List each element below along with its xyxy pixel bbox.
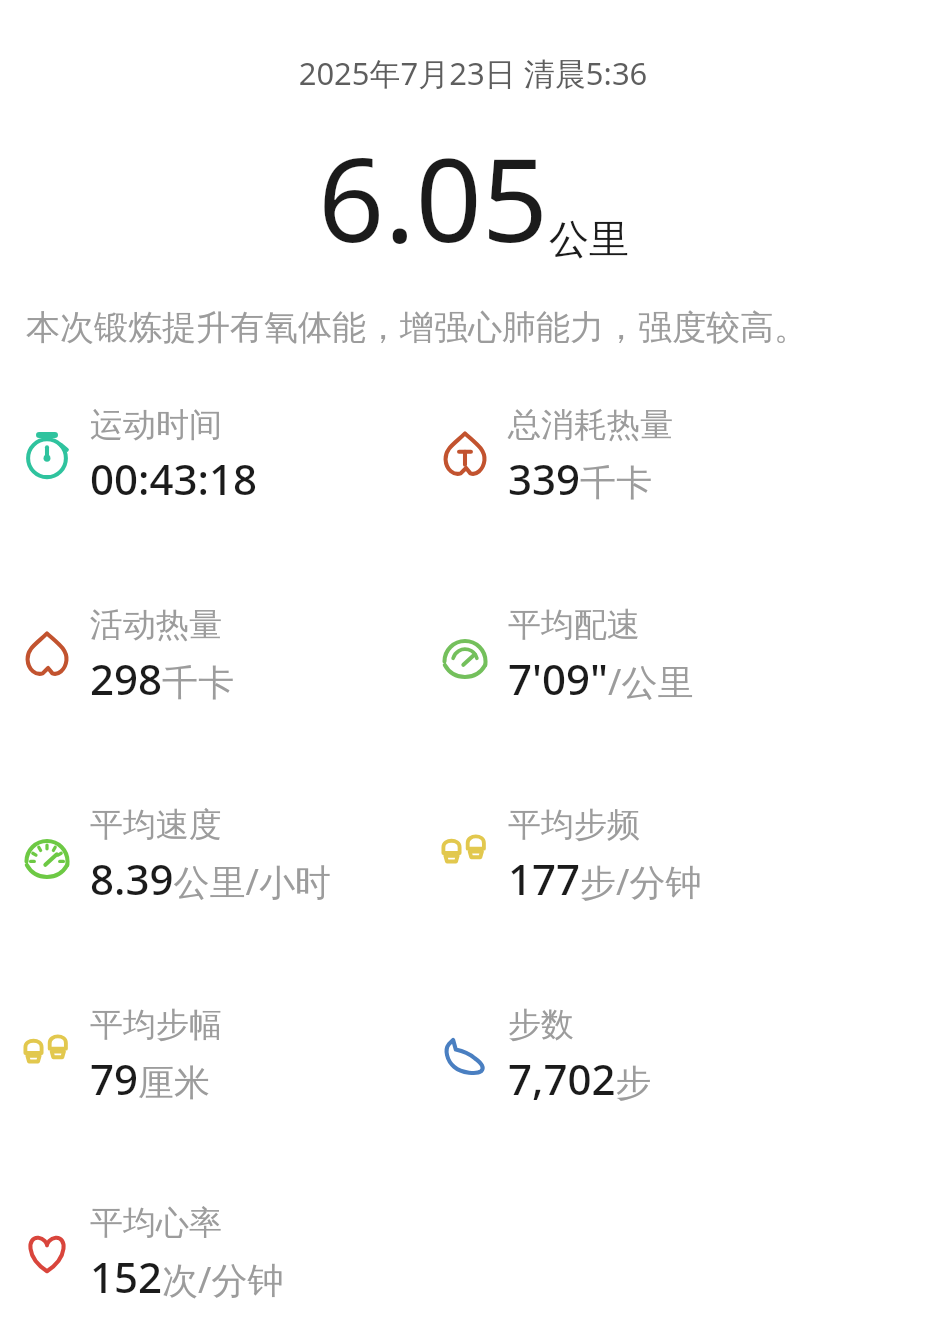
staticText: 7'09"/公里	[508, 650, 694, 707]
staticText: 平均速度	[90, 804, 222, 846]
staticText: 平均配速	[508, 604, 640, 646]
button[interactable]: Average pace	[418, 575, 946, 735]
staticText: 6.05	[318, 118, 549, 276]
staticText: 7,702步	[508, 1050, 652, 1107]
staticText: 339千卡	[508, 450, 653, 507]
button[interactable]: Total calories	[418, 375, 946, 535]
staticText: 公里	[549, 214, 629, 264]
staticText: 运动时间	[90, 404, 222, 446]
staticText: 8.39公里/小时	[90, 850, 331, 907]
staticText: 298千卡	[90, 650, 235, 707]
staticText: 平均心率	[90, 1202, 222, 1244]
button[interactable]: Steps	[418, 975, 946, 1135]
button[interactable]: Average stride	[0, 975, 418, 1135]
button[interactable]: Average heart rate	[0, 1175, 418, 1332]
staticText: 177步/分钟	[508, 850, 702, 907]
staticText: 步数	[508, 1004, 574, 1046]
staticText: 00:43:18	[90, 450, 257, 507]
staticText: 平均步幅	[90, 1004, 222, 1046]
staticText: 平均步频	[508, 804, 640, 846]
staticText: 总消耗热量	[508, 404, 673, 446]
button[interactable]: Exercise time	[0, 375, 418, 535]
button[interactable]: Average cadence	[418, 775, 946, 935]
staticText: 活动热量	[90, 604, 222, 646]
button[interactable]: Average speed	[0, 775, 418, 935]
button[interactable]: Active calories	[0, 575, 418, 735]
staticText: 79厘米	[90, 1050, 211, 1107]
staticText: 2025年7月23日 清晨5:36	[0, 52, 946, 94]
staticText: 152次/分钟	[90, 1248, 284, 1305]
staticText: 本次锻炼提升有氧体能，增强心肺能力，强度较高。	[26, 306, 808, 349]
